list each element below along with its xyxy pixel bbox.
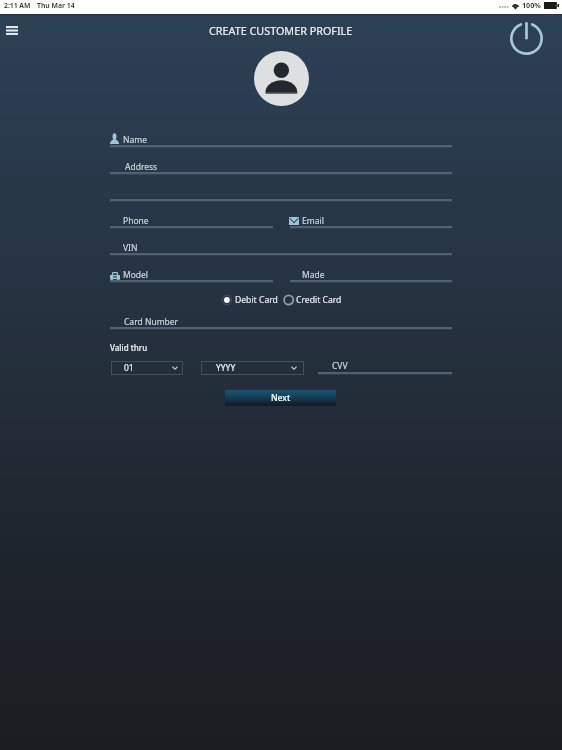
button[interactable] [290,210,452,228]
staticText: CVV [332,360,348,372]
button[interactable]: Power [506,18,547,59]
button[interactable] [110,210,273,228]
button[interactable] [110,237,452,255]
staticText: Card Number [124,316,179,328]
button[interactable] [110,311,452,329]
staticText: Debit Card [235,294,278,306]
button[interactable] [318,355,452,372]
staticText: 2:11 AM [4,1,31,10]
staticText: Phone [123,215,149,227]
staticText: 100% [522,0,541,10]
staticText: VIN [123,242,138,254]
staticText: Thu Mar 14 [37,1,75,10]
staticText: 01 [124,362,134,374]
staticText: Model [123,269,149,281]
button[interactable]: Credit Card [281,293,341,307]
button[interactable]: Menu [0,18,24,42]
staticText: Address [125,161,158,173]
button[interactable] [110,183,452,201]
button[interactable]: Next [225,390,336,406]
staticText: Valid thru [110,342,148,353]
staticText: Name [123,134,147,146]
staticText: Credit Card [296,294,342,306]
button[interactable] [110,156,452,174]
button[interactable]: 01 [111,361,183,375]
staticText: Next [271,392,291,404]
staticText: CREATE CUSTOMER PROFILE [209,23,353,38]
button[interactable]: Profile photo [254,51,309,106]
staticText: YYYY [216,362,236,374]
button[interactable]: YYYY [201,361,304,375]
button[interactable] [290,264,452,282]
button[interactable]: Debit Card [220,293,277,307]
button[interactable] [110,129,452,147]
staticText: Made [302,269,325,281]
staticText: Email [302,215,324,227]
button[interactable] [110,264,273,282]
